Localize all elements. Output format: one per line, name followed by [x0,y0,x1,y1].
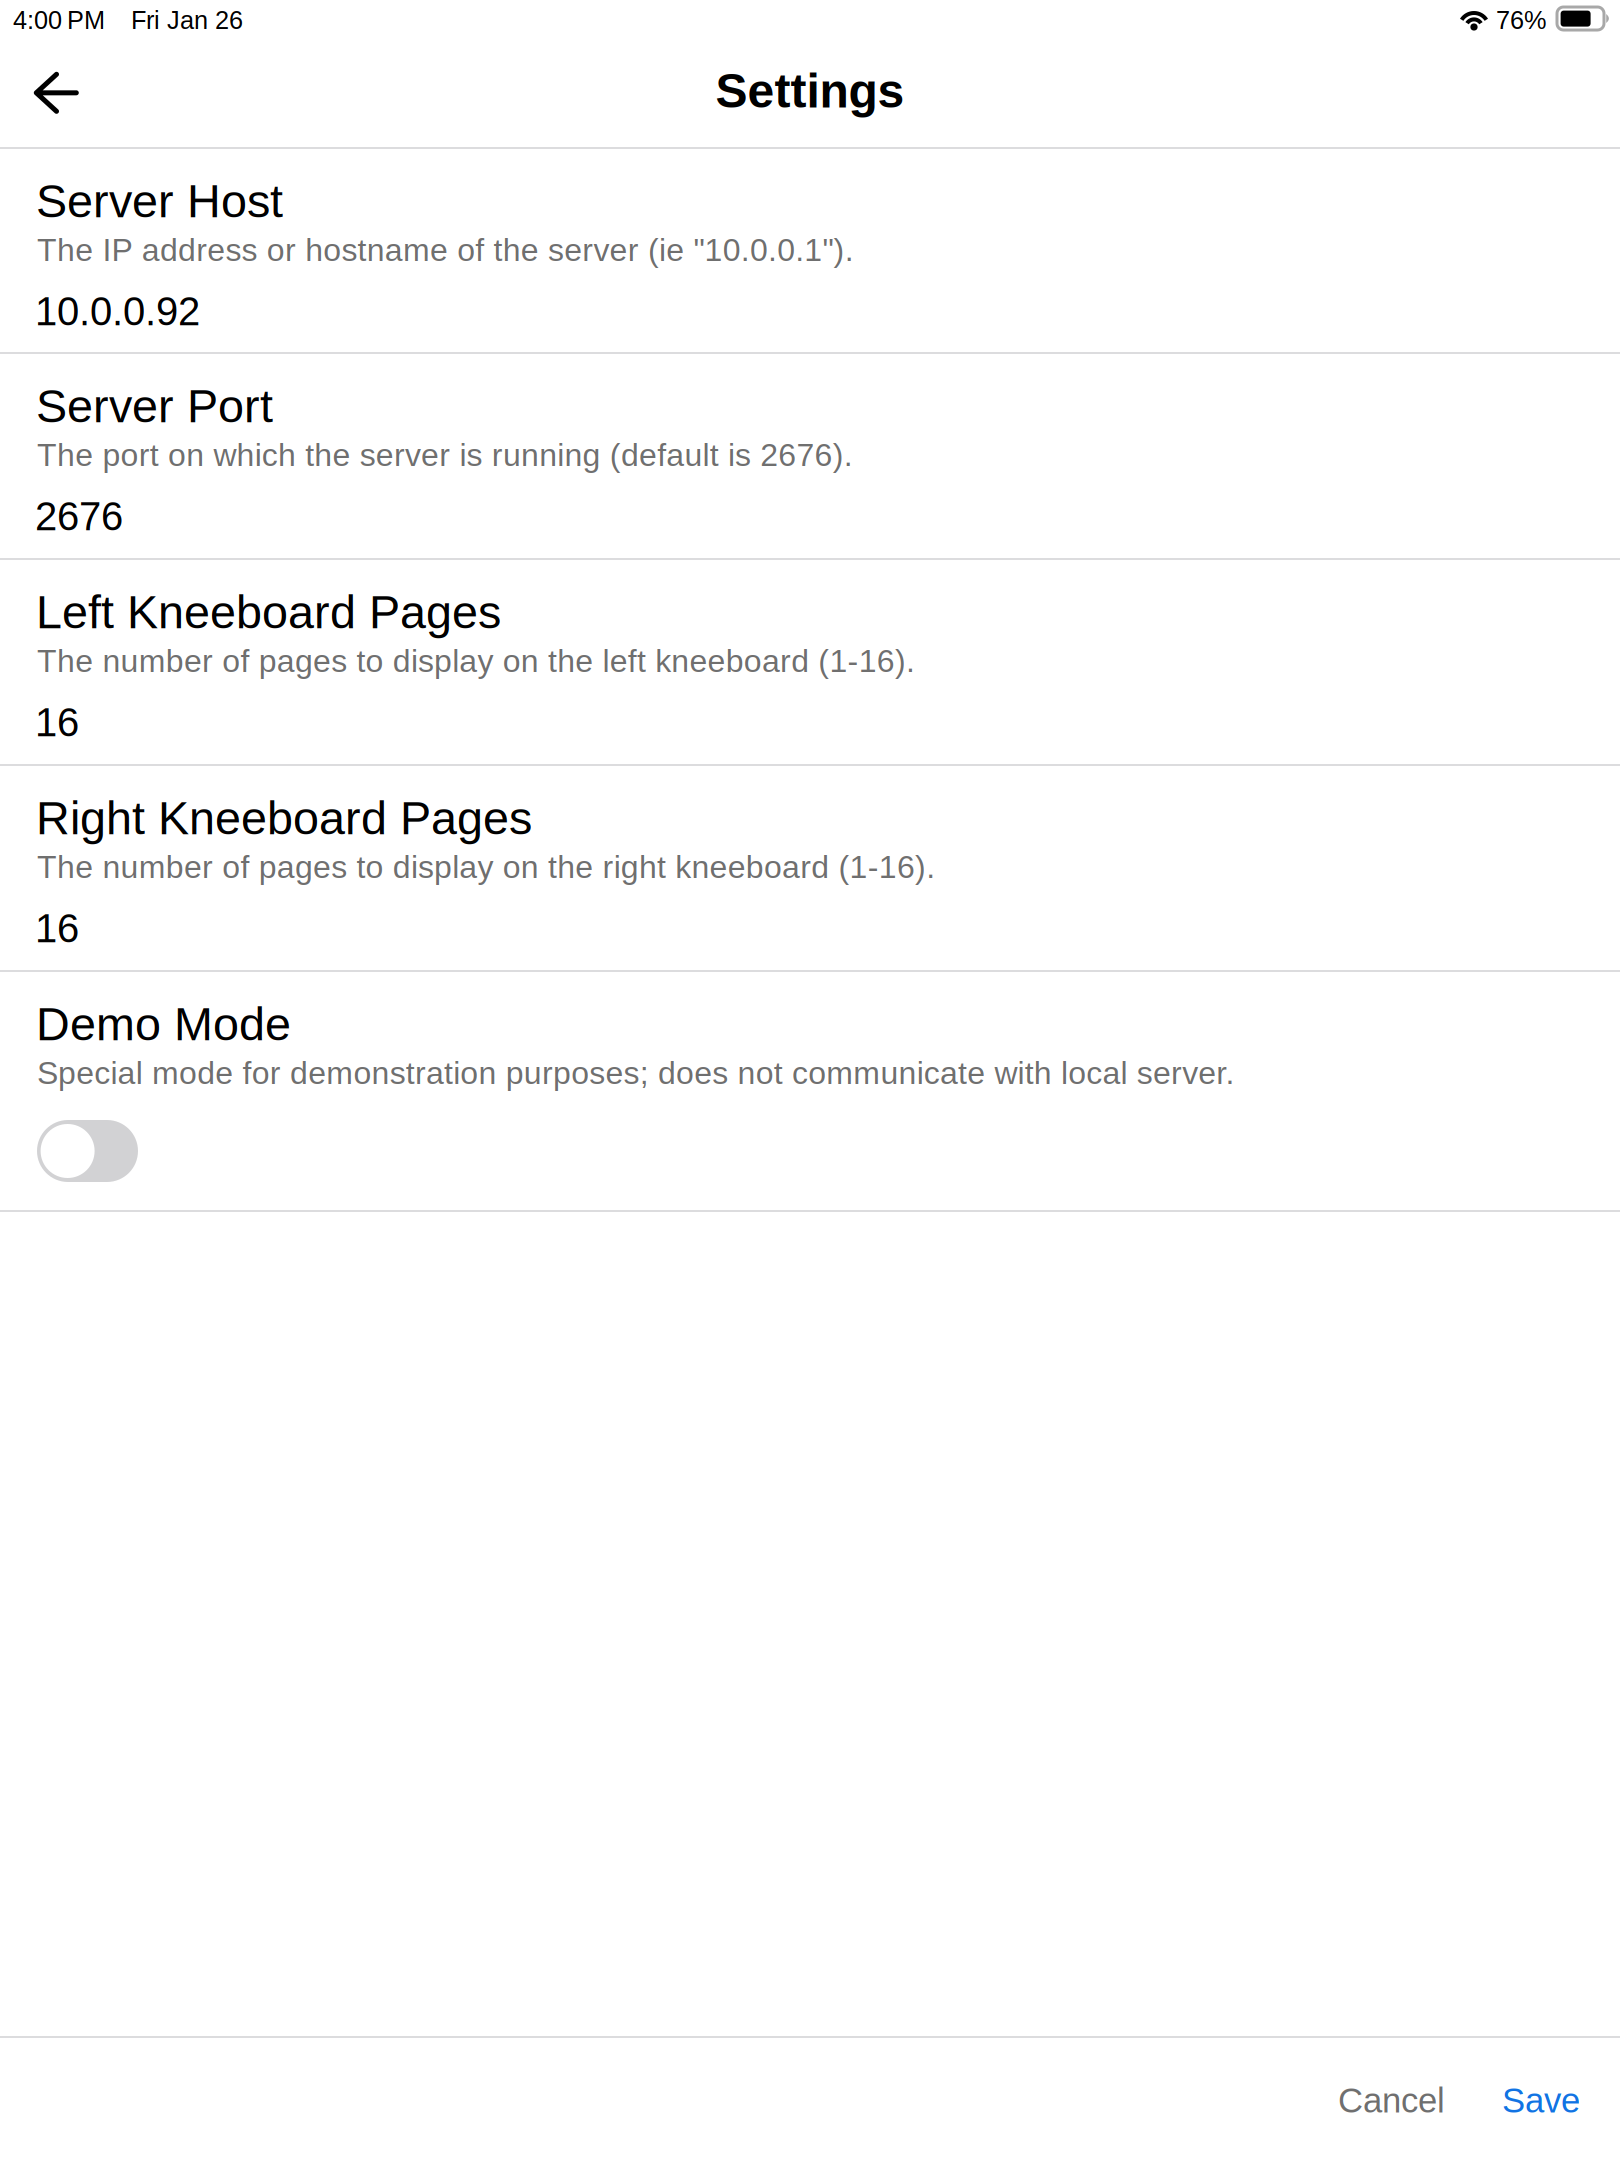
staticText: 16 [35,700,79,745]
staticText: 2676 [35,494,123,539]
staticText: The number of pages to display on the le… [37,643,915,679]
button[interactable]: Back [0,48,112,147]
staticText: 4:00 PM Fri Jan 26 [13,6,243,34]
button[interactable]: Save [1488,2067,1594,2134]
staticText: Demo Mode [36,998,291,1050]
staticText: Server Host [36,175,283,227]
staticText: 76% [1496,6,1547,34]
button[interactable]: Left Kneeboard Pages [0,560,1620,764]
staticText: Left Kneeboard Pages [36,586,501,638]
staticText: The port on which the server is running … [37,437,853,473]
staticText: Settings [715,64,904,118]
staticText: 10.0.0.92 [35,289,200,334]
staticText: Save [1502,2081,1580,2120]
staticText: Server Port [36,380,273,432]
staticText: Cancel [1338,2081,1445,2120]
button[interactable]: Right Kneeboard Pages [0,766,1620,970]
button[interactable]: Demo Mode [0,972,1620,1210]
staticText: The number of pages to display on the ri… [37,849,935,885]
staticText: Right Kneeboard Pages [36,792,532,844]
button[interactable]: Server Port [0,354,1620,558]
button[interactable]: Demo Mode, off [37,1120,138,1182]
staticText: 16 [35,906,79,951]
staticText: The IP address or hostname of the server… [37,232,854,268]
button[interactable]: Cancel [1324,2067,1459,2134]
button[interactable]: Server Host [0,149,1620,352]
staticText: Special mode for demonstration purposes;… [37,1055,1234,1091]
